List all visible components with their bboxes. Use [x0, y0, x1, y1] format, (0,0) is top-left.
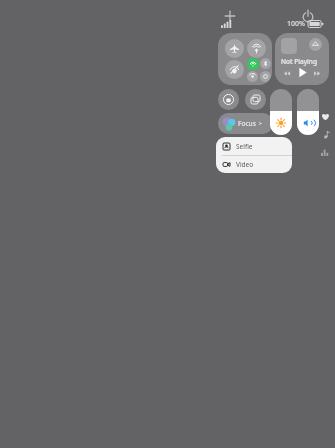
button[interactable]: Personal Hotspot: [247, 71, 258, 82]
button[interactable]: Play: [296, 66, 309, 79]
button[interactable]: AirPlay: [309, 38, 322, 51]
staticText: Selfie: [236, 142, 253, 151]
button[interactable]: Airplane Mode: [225, 39, 244, 58]
button[interactable]: Wi-Fi: [247, 58, 259, 70]
staticText: Focus: [238, 119, 256, 128]
button[interactable]: Satellite: [260, 71, 271, 82]
button[interactable]: Music: [322, 131, 330, 139]
button[interactable]: AirDrop: [247, 39, 266, 58]
button[interactable]: Bluetooth: [260, 58, 271, 69]
button[interactable]: Add: [222, 8, 238, 24]
button[interactable]: Rotation Lock: [218, 89, 239, 110]
button[interactable]: Favorite: [321, 112, 330, 121]
button[interactable]: Screen Mirroring: [245, 89, 266, 110]
button[interactable]: Equalizer: [321, 148, 329, 156]
button[interactable]: Power: [300, 8, 316, 24]
button[interactable]: Previous: [282, 68, 293, 79]
button[interactable]: Video: [216, 156, 292, 173]
staticText: Video: [236, 160, 254, 169]
button[interactable]: Next: [312, 68, 323, 79]
button[interactable]: Brightness: [270, 89, 292, 135]
button[interactable]: Cellular Data: [225, 60, 244, 79]
button[interactable]: Selfie: [216, 137, 292, 155]
staticText: 100%: [287, 19, 305, 29]
button[interactable]: Focus: [218, 113, 273, 134]
staticText: Not Playing: [281, 57, 317, 66]
button[interactable]: Volume: [297, 89, 319, 135]
button[interactable]: AirPlay: [275, 33, 329, 85]
